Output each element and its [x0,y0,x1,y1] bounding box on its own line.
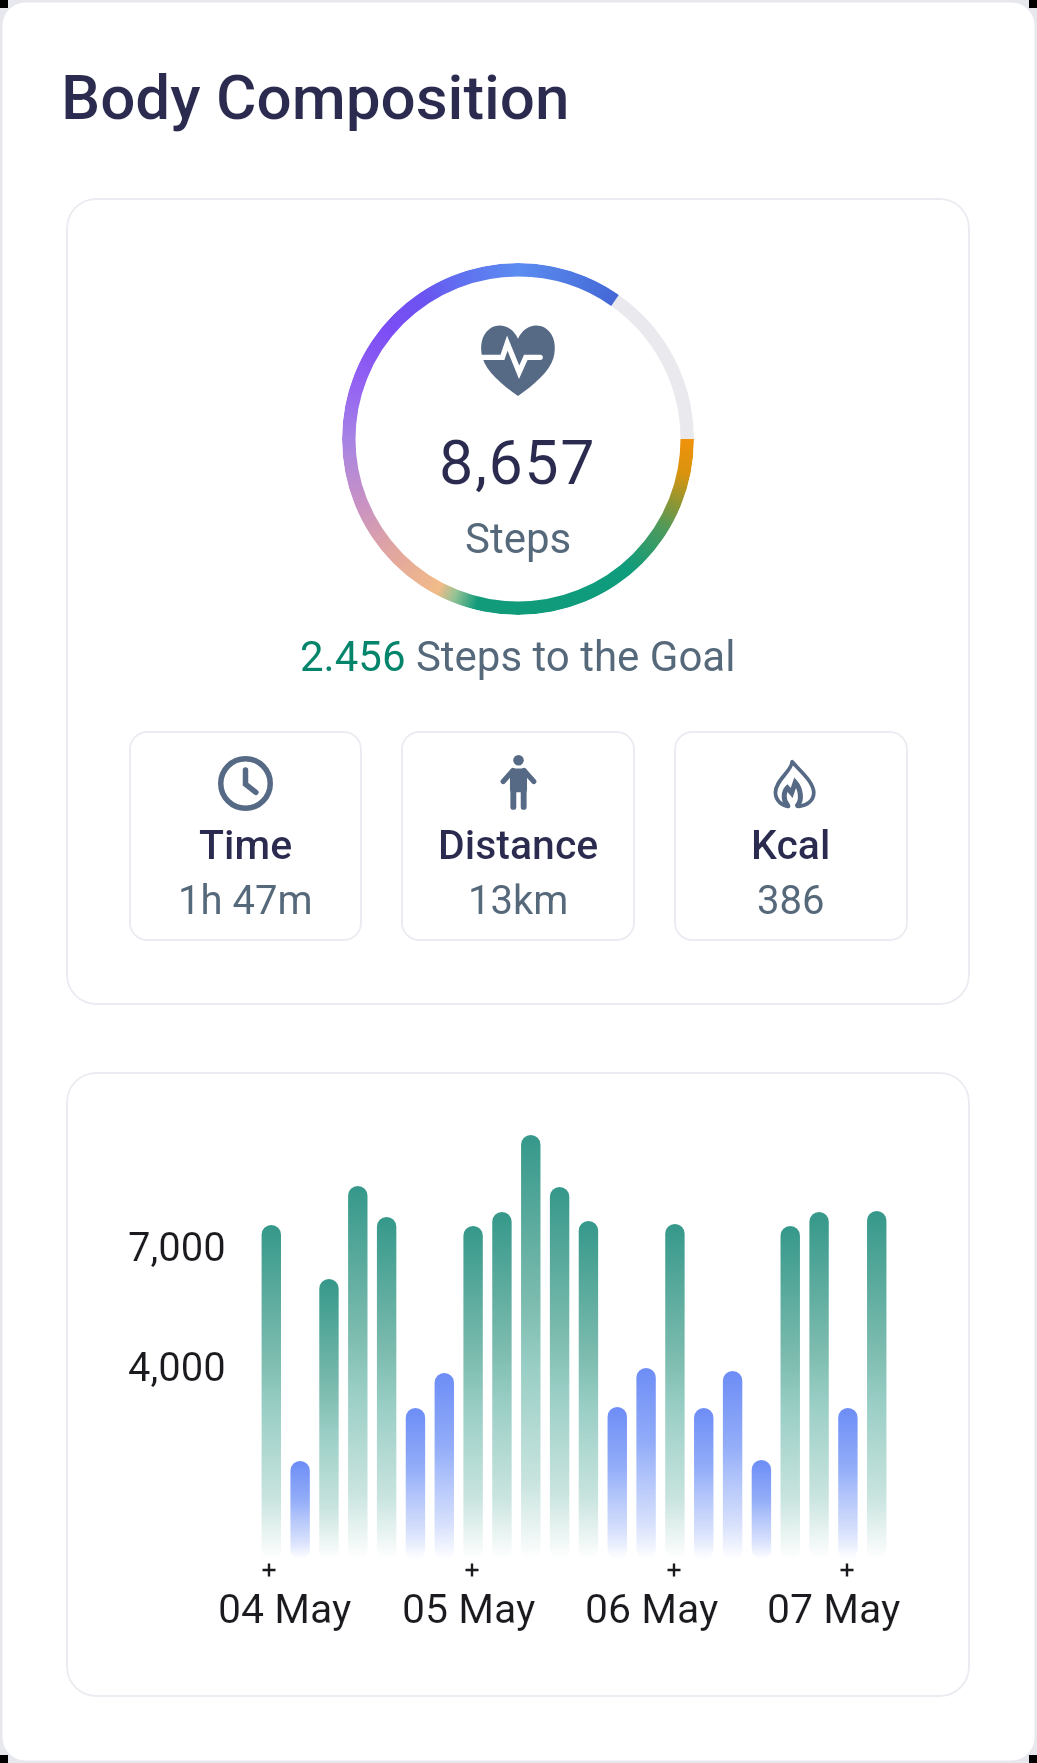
staticText: 386 [757,877,825,924]
staticText: 13km [468,877,569,924]
button[interactable]: 7,000 [66,1072,970,1697]
button[interactable]: Kcal [674,731,908,941]
button[interactable]: Daily step goal progress, 8,657 steps [66,198,970,1005]
staticText: 8,657 [439,427,597,498]
staticText: Body Composition [61,61,570,134]
button[interactable]: Time [129,731,362,941]
staticText: 2.456 Steps to the Goal [300,632,736,681]
staticText: 7,000 [128,1224,226,1271]
staticText: 05 May [402,1585,536,1633]
staticText: 06 May [585,1585,719,1633]
staticText: 4,000 [128,1344,226,1391]
button[interactable]: Distance [401,731,635,941]
staticText: 04 May [218,1585,352,1633]
staticText: 1h 47m [178,877,313,924]
staticText: Distance [438,821,599,869]
staticText: Steps [465,514,572,563]
staticText: Kcal [751,821,831,869]
staticText: Time [199,821,293,869]
staticText: 07 May [767,1585,901,1633]
button[interactable]: Daily step goal progress, 8,657 steps [342,263,694,615]
